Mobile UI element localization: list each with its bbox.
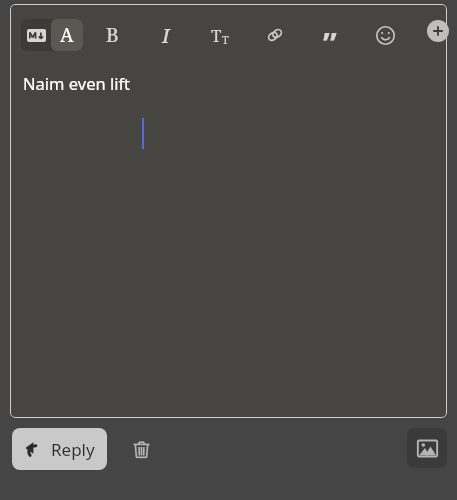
button[interactable]: Insert emoji [364,14,406,56]
button[interactable]: Rich text [51,19,83,51]
staticText: T [211,24,222,47]
button[interactable]: Text size [199,14,241,56]
staticText: Naim even lift [23,72,131,94]
staticText: T [222,32,229,47]
staticText: Reply [51,438,95,461]
button[interactable]: Bold [91,14,133,56]
button[interactable]: Add [427,20,449,42]
button[interactable]: Delete [122,430,160,468]
button[interactable]: Insert image [407,428,447,468]
staticText: I [162,22,170,49]
staticText: ” [323,22,337,64]
staticText: A [60,22,74,48]
staticText: B [106,22,119,48]
button[interactable]: Insert link [254,14,296,56]
button[interactable]: Italic [145,14,187,56]
button[interactable]: Quote [309,14,351,56]
button[interactable]: Reply [12,428,107,470]
button[interactable]: Markdown [21,19,51,51]
